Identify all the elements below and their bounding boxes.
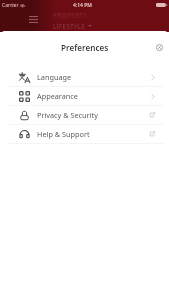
staticText: Privacy & Security — [37, 110, 98, 120]
staticText: Carrier — [2, 2, 19, 9]
button[interactable]: Help & Support — [0, 125, 169, 144]
staticText: Preferences — [61, 42, 109, 53]
staticText: LIFESTYLE — [53, 22, 86, 30]
button[interactable]: Appearance — [0, 87, 169, 106]
staticText: PROPERTY — [53, 11, 88, 20]
button[interactable]: Close — [152, 40, 166, 54]
button[interactable]: Language — [0, 68, 169, 87]
staticText: Help & Support — [37, 129, 90, 139]
staticText: Appearance — [37, 91, 78, 101]
staticText: 4:14 PM — [73, 2, 92, 9]
button[interactable]: Privacy & Security — [0, 106, 169, 125]
button[interactable]: Menu — [24, 13, 42, 26]
staticText: Language — [37, 72, 72, 82]
